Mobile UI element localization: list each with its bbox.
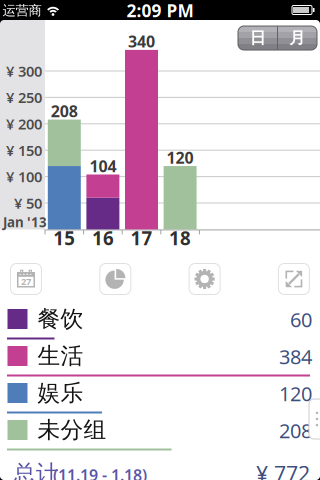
staticText: ¥ 100	[6, 167, 42, 186]
button[interactable]: 日	[238, 26, 277, 50]
staticText: 日	[250, 28, 266, 48]
staticText: 27	[21, 275, 31, 288]
button[interactable]: 生活	[0, 346, 320, 383]
staticText: 18	[169, 226, 191, 250]
staticText: 208	[279, 417, 312, 444]
staticText: 16	[92, 226, 114, 250]
staticText: 运营商	[2, 2, 41, 19]
staticText: 生活	[37, 342, 83, 370]
staticText: 60	[290, 306, 312, 333]
staticText: 384	[279, 343, 312, 370]
button[interactable]: 娱乐	[0, 383, 320, 420]
staticText: Jan '13	[3, 213, 47, 231]
staticText: 17	[130, 226, 152, 250]
staticText: 120	[279, 380, 312, 407]
staticText: 208	[51, 100, 78, 122]
button[interactable]: 月	[277, 26, 317, 50]
staticText: 15	[53, 226, 75, 250]
button[interactable]: 未分组	[0, 420, 320, 457]
staticText: ¥ 300	[6, 61, 42, 81]
button[interactable]: 餐饮	[0, 309, 320, 346]
button[interactable]: Expand	[278, 263, 309, 294]
staticText: ¥ 50	[14, 193, 42, 213]
button[interactable]: Pie chart	[100, 263, 131, 294]
staticText: 2:09 PM	[126, 0, 193, 22]
button[interactable]: Calendar	[10, 263, 41, 294]
button[interactable]: Settings	[189, 263, 220, 294]
staticText: (11.19 - 1.18)	[53, 464, 147, 480]
staticText: 104	[89, 155, 116, 177]
staticText: 娱乐	[37, 379, 83, 407]
button[interactable]: 总计	[0, 454, 320, 480]
staticText: 120	[167, 147, 194, 168]
staticText: ¥ 772	[256, 459, 310, 480]
staticText: 未分组	[37, 416, 106, 444]
staticText: 餐饮	[37, 305, 83, 333]
staticText: 总计	[13, 460, 59, 480]
staticText: 月	[289, 28, 305, 48]
staticText: 340	[128, 31, 155, 52]
staticText: ¥ 200	[6, 114, 42, 134]
staticText: ¥ 150	[6, 140, 42, 160]
staticText: ¥ 250	[6, 88, 42, 107]
